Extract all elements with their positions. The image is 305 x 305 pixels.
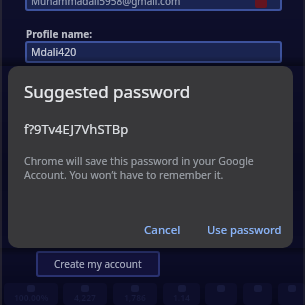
staticText: 100.00% (14, 292, 49, 304)
staticText: Suggested password (24, 80, 191, 103)
staticText: Cancel (144, 222, 181, 238)
staticText: 1.14 (173, 292, 190, 304)
staticText: Muhammadali5958@gmail.com (31, 0, 181, 8)
staticText: Profile name: (26, 27, 93, 41)
staticText: 4,227 (74, 292, 96, 304)
staticText: Use password (207, 222, 282, 237)
staticText: Create my account (54, 257, 142, 271)
button[interactable]: Use password (197, 212, 292, 247)
staticText: f?9Tv4EJ7VhSTBp (24, 120, 129, 138)
staticText: Chrome will save this password in your G… (24, 154, 254, 183)
staticText: Mdali420 (31, 45, 77, 59)
button[interactable]: Create my account (36, 251, 160, 277)
button[interactable]: Cancel (134, 212, 191, 248)
staticText: 1,786 (124, 292, 146, 304)
